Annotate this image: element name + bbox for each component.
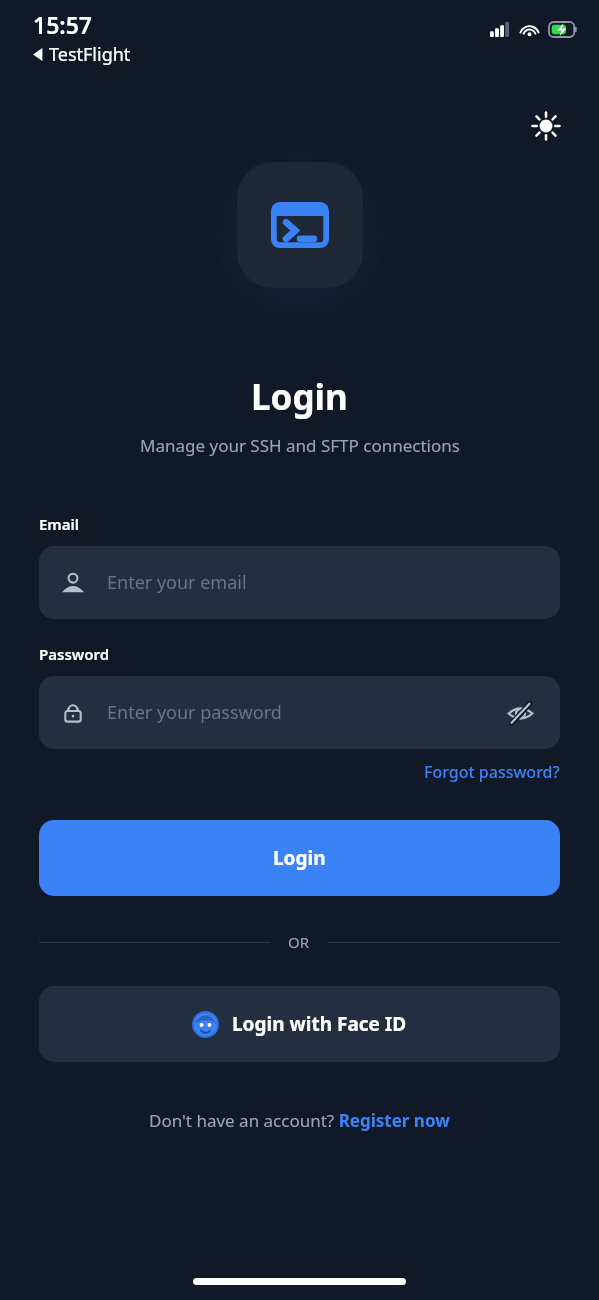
button[interactable]: Show password: [502, 695, 538, 731]
staticText: Email: [39, 514, 80, 534]
staticText: Manage your SSH and SFTP connections: [140, 434, 460, 457]
button[interactable]: Login with Face ID: [39, 986, 560, 1062]
button[interactable]: Enter your password: [39, 676, 560, 749]
button[interactable]: Don't have an account? Register now: [149, 1109, 450, 1132]
staticText: Don't have an account? Register now: [149, 1109, 450, 1132]
button[interactable]: Forgot password?: [424, 761, 560, 783]
staticText: Login: [273, 845, 326, 871]
button[interactable]: Login: [39, 820, 560, 896]
staticText: Forgot password?: [424, 761, 560, 783]
button[interactable]: Toggle theme: [524, 104, 568, 148]
staticText: Enter your email: [107, 570, 247, 595]
staticText: Password: [39, 644, 110, 664]
staticText: Enter your password: [107, 700, 282, 725]
staticText: TestFlight: [49, 42, 131, 67]
staticText: 15:57: [33, 9, 92, 40]
button[interactable]: Enter your email: [39, 546, 560, 619]
staticText: Login: [251, 373, 348, 421]
staticText: OR: [288, 932, 310, 952]
staticText: Login with Face ID: [232, 1011, 407, 1037]
